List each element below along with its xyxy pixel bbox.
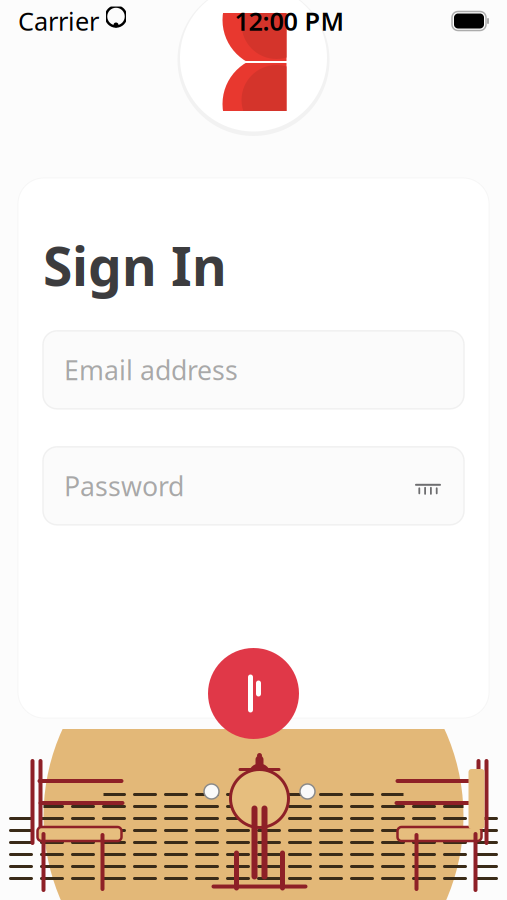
staticText: Password xyxy=(64,468,184,503)
button[interactable]: Continue xyxy=(208,648,299,739)
staticText: Sign In xyxy=(43,230,227,301)
staticText: 12:00 PM xyxy=(234,4,344,38)
staticText: Email address xyxy=(64,352,238,387)
button[interactable]: Email address xyxy=(43,331,464,409)
staticText: Carrier xyxy=(18,4,99,38)
button[interactable]: Password xyxy=(43,447,464,525)
